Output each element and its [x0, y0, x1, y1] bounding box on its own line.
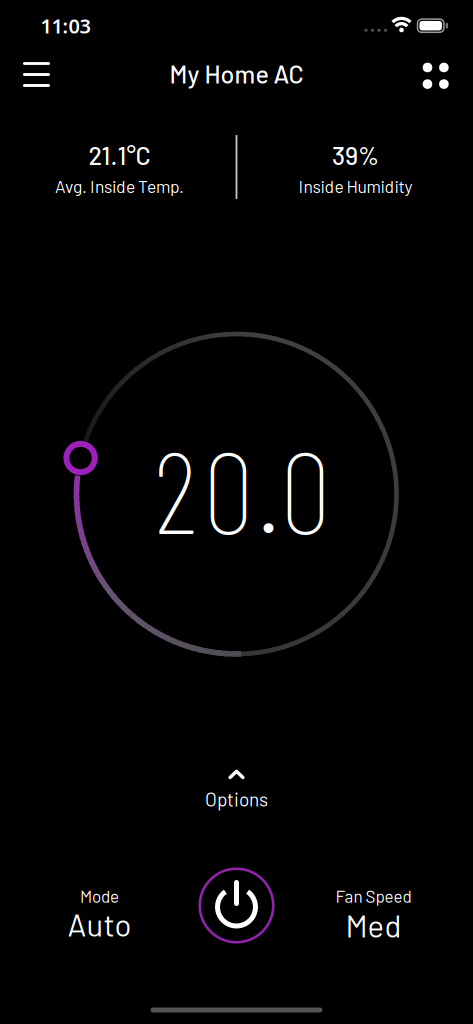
staticText: Inside Humidity [298, 175, 412, 196]
staticText: 11:03 [40, 12, 90, 39]
staticText: Fan Speed [335, 886, 411, 906]
button[interactable]: Fan Speed [308, 865, 438, 935]
staticText: Auto [67, 905, 131, 943]
button[interactable]: Power [199, 868, 274, 943]
button[interactable]: Menu [18, 55, 55, 94]
staticText: Options [205, 787, 268, 810]
staticText: Mode [80, 886, 119, 906]
staticText: 21.1°C [88, 140, 150, 170]
button[interactable]: Devices [416, 56, 455, 95]
button[interactable]: Mode [39, 865, 159, 935]
staticText: Avg. Inside Temp. [55, 175, 184, 196]
staticText: 20.0 [154, 419, 330, 557]
staticText: My Home AC [169, 58, 303, 88]
button[interactable]: Options [181, 761, 291, 817]
staticText: 39% [332, 140, 379, 170]
staticText: Med [345, 906, 401, 944]
